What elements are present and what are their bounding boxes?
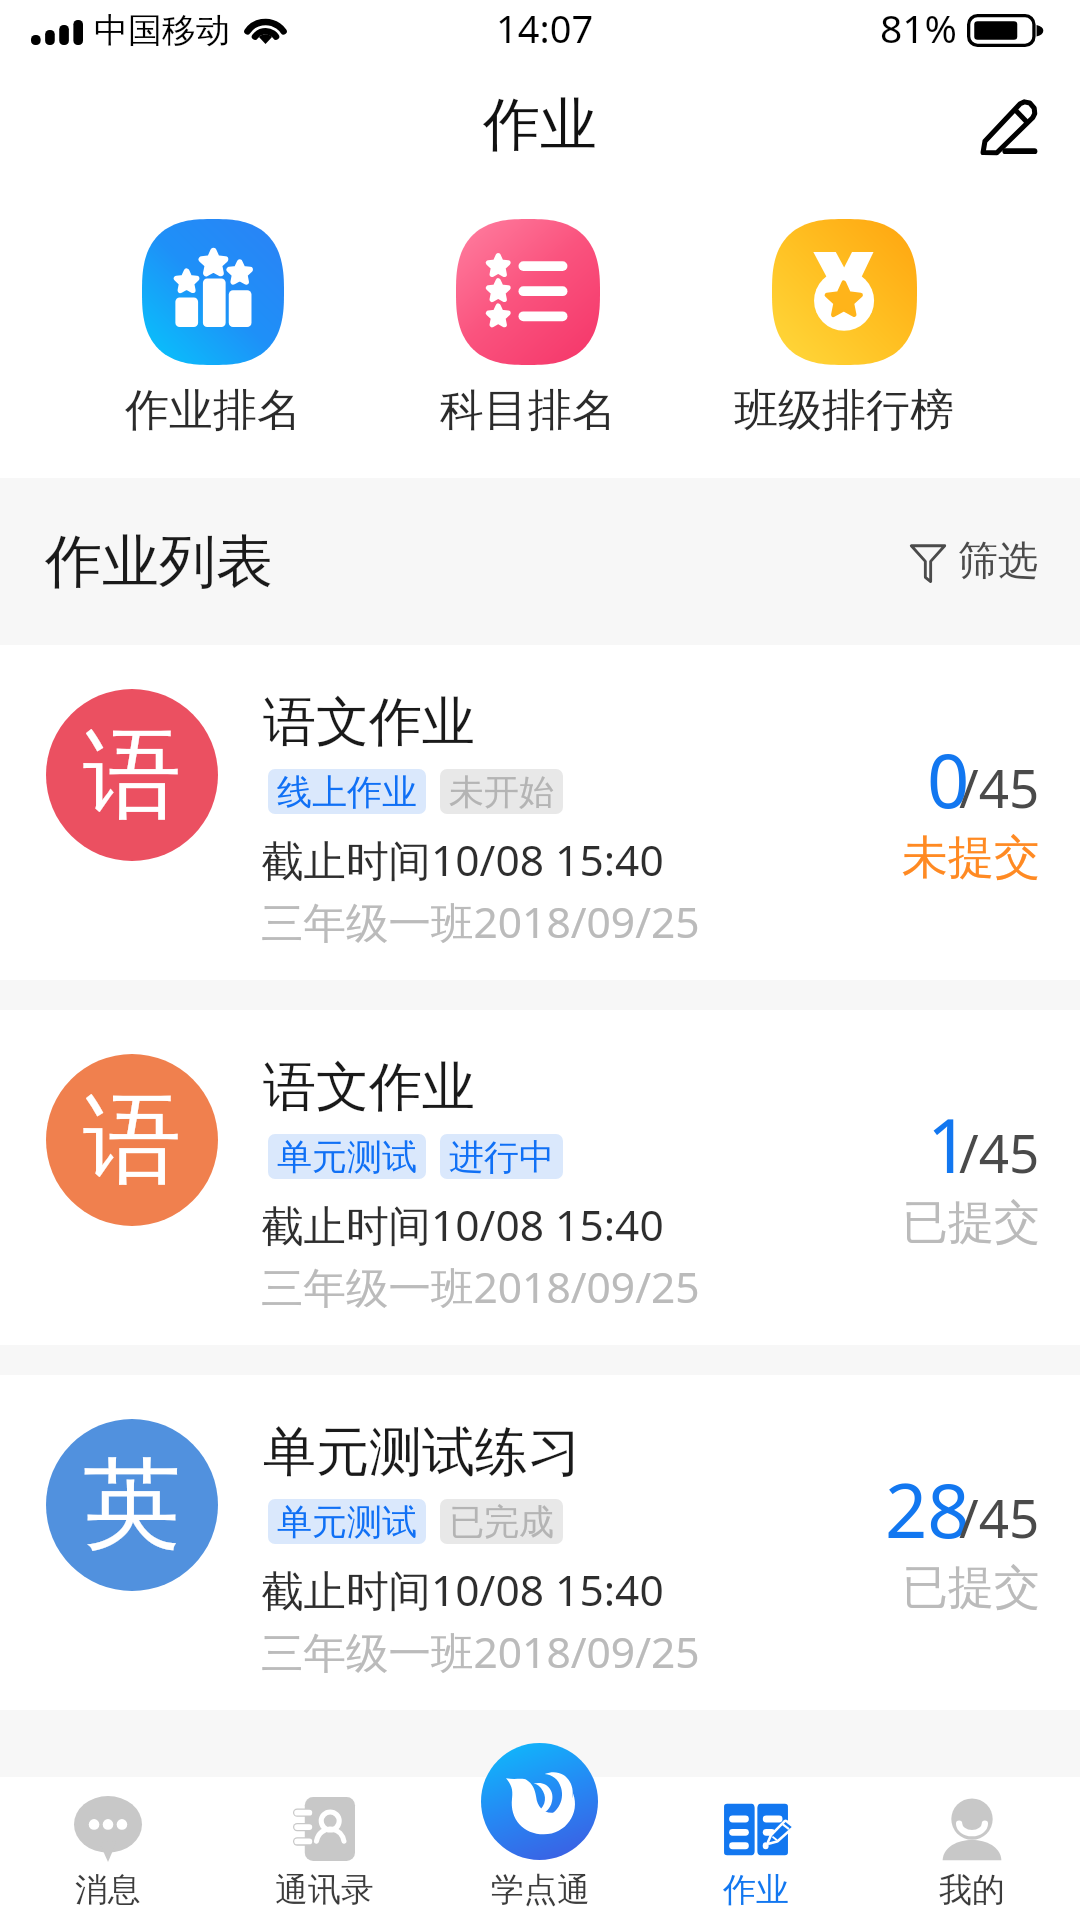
staticText: 三年级一班2018/09/25: [261, 1623, 700, 1681]
button[interactable]: 学点通: [432, 1777, 648, 1920]
staticText: 通讯录: [275, 1869, 374, 1911]
button[interactable]: 语: [0, 1010, 1080, 1345]
staticText: /45: [959, 1481, 1040, 1553]
staticText: 学点通: [491, 1869, 590, 1911]
staticText: 28: [885, 1459, 970, 1560]
staticText: 未开始: [449, 770, 554, 814]
staticText: 英: [83, 1444, 181, 1567]
button[interactable]: 我的: [864, 1777, 1080, 1920]
staticText: 语文作业: [263, 1054, 475, 1121]
staticText: 我的: [939, 1869, 1005, 1911]
staticText: 科目排名: [440, 383, 616, 438]
button[interactable]: 筛选: [909, 535, 1038, 585]
staticText: 单元测试: [277, 1135, 417, 1179]
button[interactable]: 英: [0, 1375, 1080, 1710]
button[interactable]: 编辑: [962, 80, 1054, 172]
staticText: 截止时间10/08 15:40: [261, 1561, 664, 1619]
staticText: 1: [927, 1094, 970, 1195]
staticText: 中国移动: [94, 9, 230, 52]
staticText: 已提交: [902, 1559, 1040, 1617]
button[interactable]: 学点通: [481, 1743, 598, 1860]
staticText: 班级排行榜: [734, 383, 954, 438]
staticText: 语: [83, 1079, 181, 1202]
staticText: 作业排名: [125, 383, 301, 438]
staticText: 作业列表: [45, 526, 273, 598]
staticText: 单元测试: [277, 1500, 417, 1544]
staticText: 线上作业: [277, 770, 417, 814]
button[interactable]: 语: [0, 645, 1080, 980]
staticText: 截止时间10/08 15:40: [261, 831, 664, 889]
staticText: 三年级一班2018/09/25: [261, 1258, 700, 1316]
staticText: 14:07: [496, 2, 594, 54]
staticText: 81%: [880, 1, 958, 54]
button[interactable]: 作业: [648, 1777, 864, 1920]
staticText: 作业: [483, 89, 597, 161]
staticText: 截止时间10/08 15:40: [261, 1196, 664, 1254]
staticText: 进行中: [449, 1135, 554, 1179]
staticText: 未提交: [902, 829, 1040, 887]
staticText: 作业: [723, 1869, 789, 1911]
button[interactable]: 消息: [0, 1777, 216, 1920]
staticText: /45: [959, 1116, 1040, 1188]
staticText: 语文作业: [263, 689, 475, 756]
staticText: 0: [927, 729, 970, 830]
button[interactable]: 通讯录: [216, 1777, 432, 1920]
staticText: 已完成: [449, 1500, 554, 1544]
staticText: 单元测试练习: [263, 1419, 581, 1486]
staticText: /45: [959, 751, 1040, 823]
button[interactable]: 科目排名: [383, 180, 673, 438]
button[interactable]: 班级排行榜: [699, 180, 989, 438]
staticText: 消息: [75, 1869, 141, 1911]
staticText: 已提交: [902, 1194, 1040, 1252]
button[interactable]: 作业排名: [68, 180, 358, 438]
staticText: 三年级一班2018/09/25: [261, 893, 700, 951]
staticText: 语: [83, 714, 181, 837]
staticText: 筛选: [958, 535, 1038, 585]
